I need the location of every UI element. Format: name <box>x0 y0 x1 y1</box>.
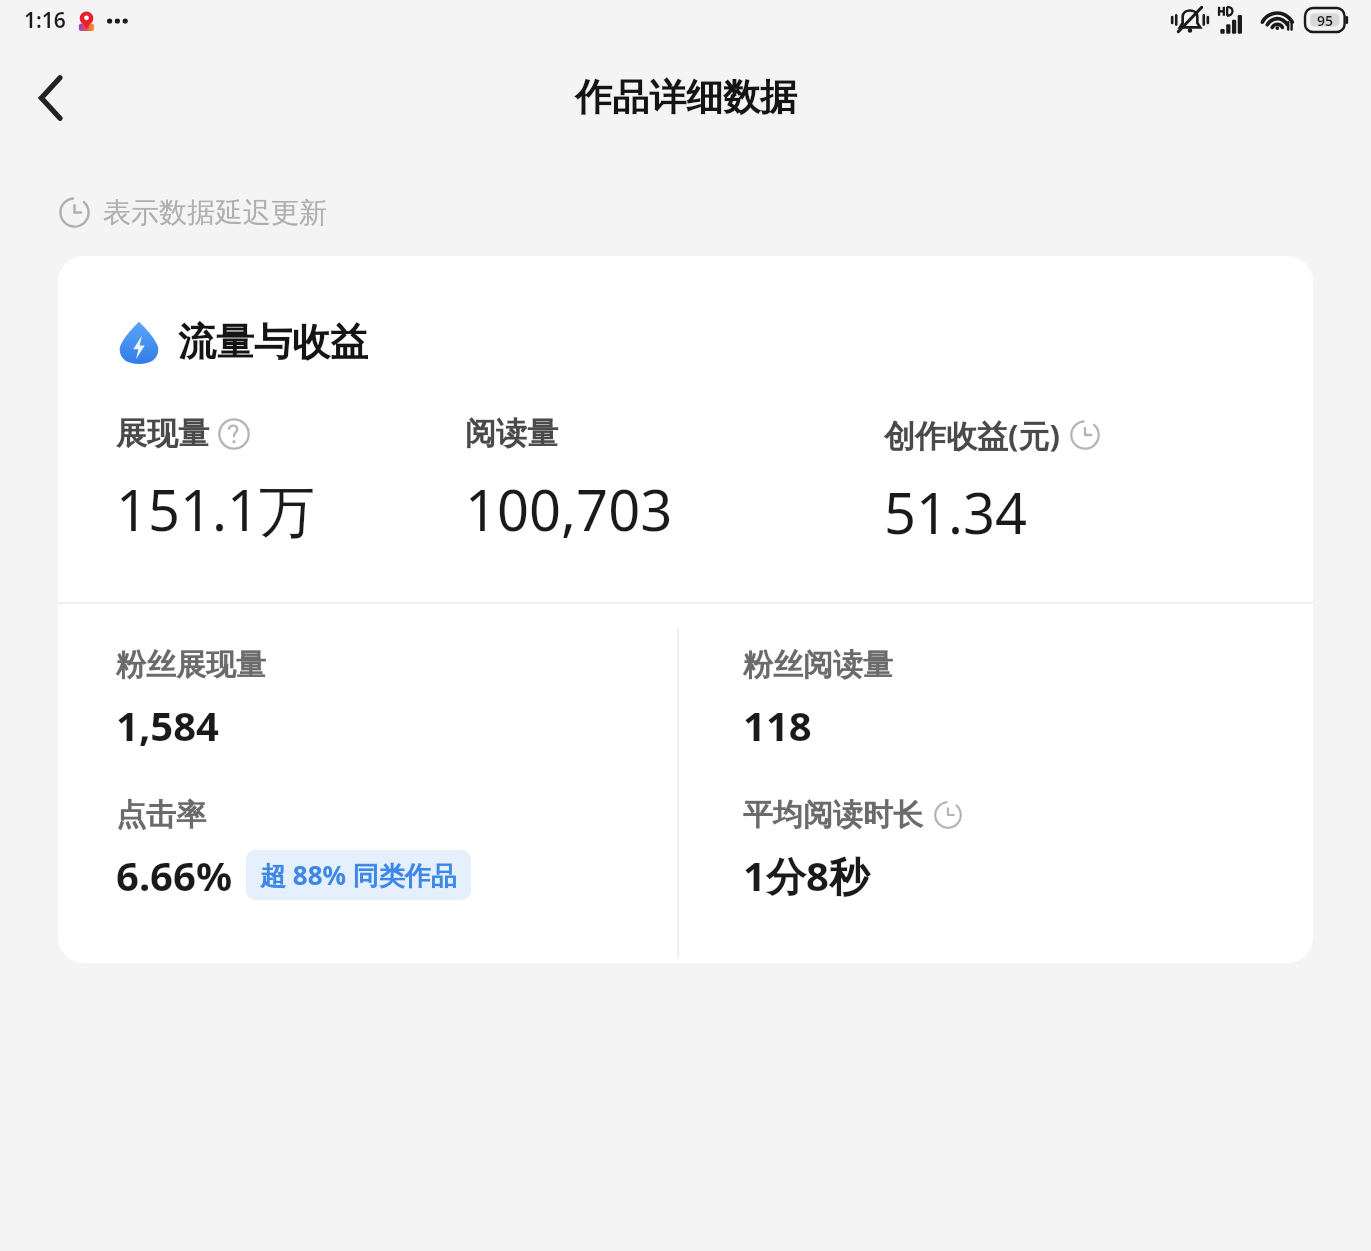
staticText: 1,584 <box>116 698 219 752</box>
staticText: 100,703 <box>465 471 673 547</box>
button[interactable]: 阅读量 <box>465 414 880 547</box>
staticText: 95 <box>1317 11 1334 30</box>
staticText: 151.1万 <box>116 471 316 547</box>
staticText: 118 <box>743 698 812 752</box>
staticText: 6.66% <box>116 848 232 902</box>
staticText: 作品详细数据 <box>575 74 797 121</box>
button[interactable]: 创作收益(元) <box>884 414 1313 550</box>
staticText: 创作收益(元) <box>884 414 1061 456</box>
button[interactable]: 超 88% 同类作品 <box>246 850 471 900</box>
staticText: 平均阅读时长 <box>743 796 923 834</box>
button[interactable]: Back <box>18 65 84 131</box>
staticText: 流量与收益 <box>178 318 368 366</box>
staticText: 展现量 <box>116 414 209 453</box>
staticText: 表示数据延迟更新 <box>103 195 327 230</box>
button[interactable]: 粉丝展现量 <box>116 646 685 752</box>
staticText: 1:16 <box>24 6 66 35</box>
staticText: 阅读量 <box>465 414 558 453</box>
staticText: 点击率 <box>116 796 206 834</box>
staticText: 粉丝展现量 <box>116 646 266 684</box>
button[interactable]: 展现量 <box>116 414 459 547</box>
button[interactable]: 粉丝阅读量 <box>743 646 1313 752</box>
staticText: 1分8秒 <box>743 848 869 903</box>
staticText: 粉丝阅读量 <box>743 646 893 684</box>
staticText: 51.34 <box>884 474 1028 550</box>
staticText: 超 88% 同类作品 <box>260 857 457 893</box>
